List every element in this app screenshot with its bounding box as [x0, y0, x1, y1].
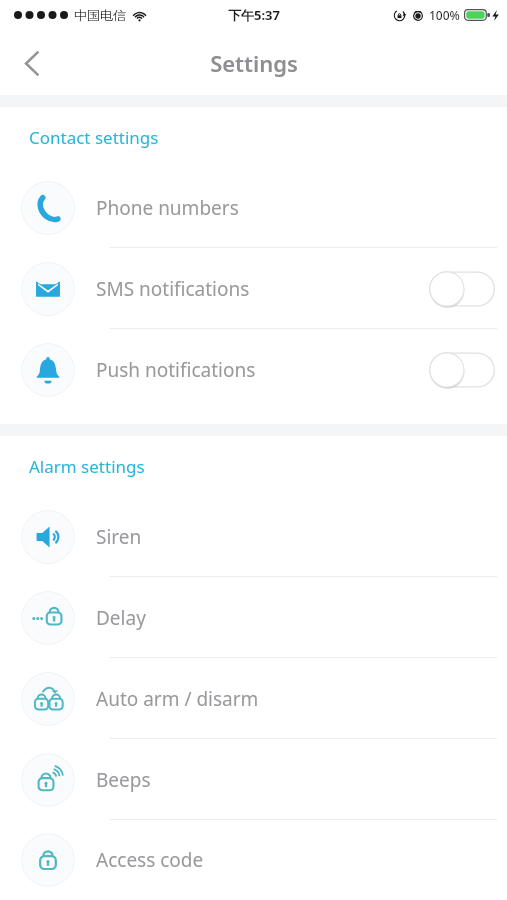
staticText: Siren	[96, 524, 142, 550]
button[interactable]: SMS notifications	[0, 248, 507, 329]
staticText: Push notifications	[96, 357, 256, 383]
button[interactable]: Siren	[0, 496, 507, 577]
staticText: Auto arm / disarm	[96, 686, 259, 712]
staticText: Delay	[96, 605, 146, 631]
staticText: SMS notifications	[96, 276, 250, 302]
staticText: 中国电信	[74, 7, 126, 23]
staticText: Settings	[210, 48, 298, 78]
button[interactable]: Beeps	[0, 739, 507, 820]
staticText: 100%	[429, 7, 460, 23]
button[interactable]: Delay	[0, 577, 507, 658]
button[interactable]: Toggle	[429, 350, 495, 390]
staticText: Access code	[96, 847, 204, 873]
button[interactable]: Access code	[0, 820, 507, 900]
staticText: Phone numbers	[96, 195, 239, 221]
button[interactable]: Phone numbers	[0, 167, 507, 248]
button[interactable]: Auto arm / disarm	[0, 658, 507, 739]
button[interactable]: Push notifications	[0, 329, 507, 410]
staticText: 下午5:37	[228, 6, 280, 24]
staticText: Alarm settings	[29, 455, 145, 478]
button[interactable]: Toggle	[429, 269, 495, 309]
staticText: Beeps	[96, 767, 151, 793]
staticText: Contact settings	[29, 126, 159, 149]
button[interactable]: Back	[8, 39, 56, 87]
